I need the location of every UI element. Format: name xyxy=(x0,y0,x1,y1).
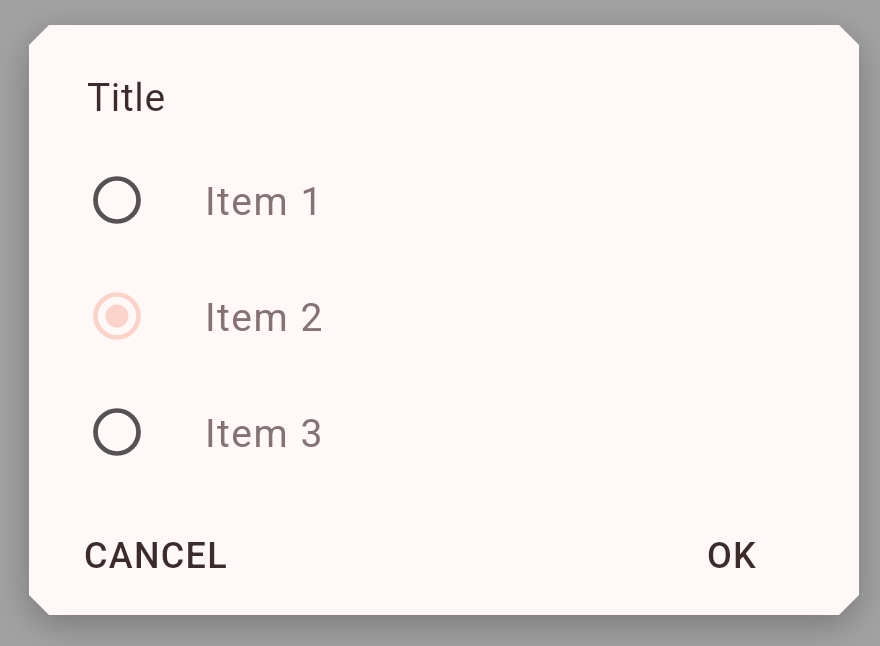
button[interactable]: Not selected xyxy=(29,142,859,258)
staticText: Item 1 xyxy=(205,179,324,225)
staticText: OK xyxy=(707,535,758,577)
button[interactable]: CANCEL xyxy=(72,525,240,587)
staticText: Item 3 xyxy=(205,411,324,457)
staticText: CANCEL xyxy=(84,535,228,577)
button[interactable]: Selected xyxy=(29,258,859,374)
other: Selected xyxy=(89,288,145,344)
other: Not selected xyxy=(89,404,145,460)
button[interactable]: OK xyxy=(695,525,770,587)
other: Not selected xyxy=(89,172,145,228)
staticText: Item 2 xyxy=(205,295,324,341)
button[interactable]: Not selected xyxy=(29,374,859,490)
staticText: Title xyxy=(87,75,166,121)
